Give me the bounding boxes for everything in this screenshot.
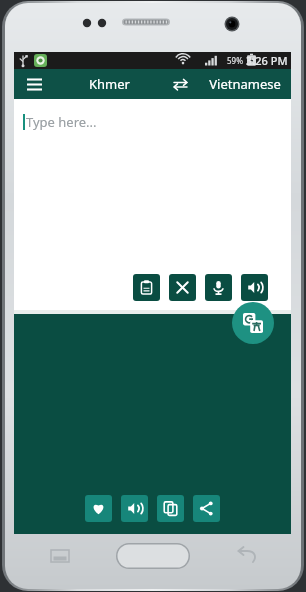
button[interactable]: Copy bbox=[157, 495, 184, 522]
button[interactable]: Type here... bbox=[23, 113, 291, 131]
button[interactable]: Speak translation bbox=[121, 495, 148, 522]
staticText: Vietnamese bbox=[209, 75, 281, 93]
button[interactable]: Swap languages bbox=[166, 70, 194, 98]
staticText: Type here... bbox=[26, 113, 97, 131]
button[interactable]: Share bbox=[193, 495, 220, 522]
button[interactable]: Paste bbox=[133, 274, 160, 301]
staticText: Khmer bbox=[89, 75, 130, 93]
button[interactable]: Speak bbox=[241, 274, 268, 301]
button[interactable]: Menu bbox=[20, 70, 48, 98]
button[interactable]: Khmer bbox=[72, 69, 146, 99]
staticText: 59% bbox=[227, 55, 243, 66]
button[interactable]: Clear bbox=[169, 274, 196, 301]
button[interactable]: Vietnamese bbox=[201, 69, 289, 99]
button[interactable]: Favorite bbox=[85, 495, 112, 522]
button[interactable]: Voice input bbox=[205, 274, 232, 301]
staticText: 3:26 PM bbox=[246, 53, 288, 68]
button[interactable]: Translate bbox=[232, 302, 274, 344]
